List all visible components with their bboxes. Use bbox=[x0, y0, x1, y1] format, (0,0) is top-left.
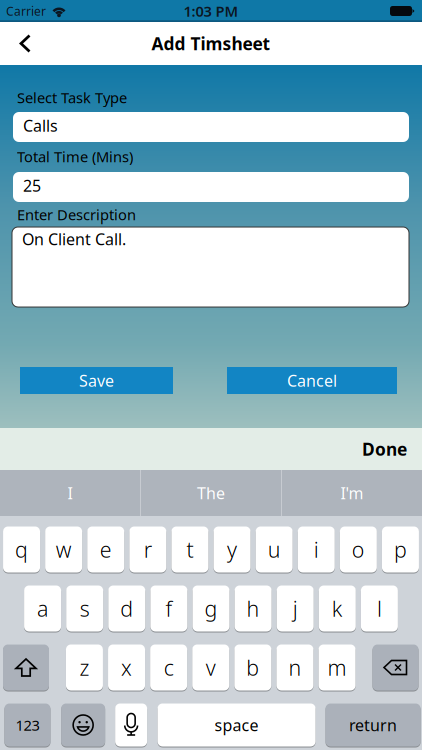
staticText: Calls bbox=[23, 115, 58, 136]
staticText: y bbox=[227, 535, 237, 564]
staticText: Carrier bbox=[6, 3, 46, 19]
staticText: j bbox=[293, 594, 298, 623]
button[interactable]: w bbox=[45, 526, 82, 573]
staticText: r bbox=[144, 535, 152, 564]
button[interactable]: Shift bbox=[3, 644, 49, 691]
staticText: Cancel bbox=[287, 370, 337, 391]
button[interactable]: s bbox=[66, 585, 103, 632]
button[interactable]: 25 bbox=[13, 172, 409, 202]
staticText: a bbox=[37, 594, 48, 623]
button[interactable]: v bbox=[192, 644, 229, 691]
staticText: h bbox=[247, 594, 260, 623]
button[interactable]: return bbox=[326, 703, 421, 747]
button[interactable]: r bbox=[129, 526, 166, 573]
button[interactable]: Back bbox=[0, 22, 44, 65]
staticText: q bbox=[15, 535, 28, 564]
staticText: n bbox=[288, 653, 301, 682]
button[interactable]: e bbox=[87, 526, 124, 573]
button[interactable]: On Client Call. bbox=[12, 227, 409, 307]
staticText: 123 bbox=[15, 715, 39, 735]
staticText: f bbox=[165, 594, 172, 623]
staticText: l bbox=[377, 594, 382, 623]
button[interactable]: z bbox=[66, 644, 103, 691]
button[interactable]: d bbox=[108, 585, 145, 632]
staticText: The bbox=[197, 482, 225, 504]
staticText: 1:03 PM bbox=[183, 1, 238, 21]
staticText: o bbox=[352, 535, 365, 564]
staticText: u bbox=[268, 535, 281, 564]
button[interactable]: Emoji bbox=[61, 703, 105, 747]
button[interactable]: Delete bbox=[372, 644, 418, 691]
button[interactable]: I bbox=[0, 470, 140, 516]
staticText: x bbox=[121, 653, 132, 682]
button[interactable]: h bbox=[235, 585, 272, 632]
staticText: g bbox=[204, 594, 217, 623]
button[interactable]: p bbox=[382, 526, 419, 573]
staticText: Add Timsheet bbox=[151, 32, 270, 55]
staticText: I'm bbox=[340, 482, 363, 504]
button[interactable]: u bbox=[256, 526, 293, 573]
button[interactable]: l bbox=[361, 585, 398, 632]
staticText: s bbox=[80, 594, 90, 623]
button[interactable]: I'm bbox=[282, 470, 422, 516]
button[interactable]: g bbox=[192, 585, 229, 632]
staticText: v bbox=[206, 653, 216, 682]
button[interactable]: y bbox=[214, 526, 251, 573]
staticText: return bbox=[349, 714, 397, 736]
button[interactable]: o bbox=[340, 526, 377, 573]
button[interactable]: The bbox=[141, 470, 281, 516]
staticText: Select Task Type bbox=[17, 88, 127, 107]
button[interactable]: t bbox=[171, 526, 208, 573]
staticText: p bbox=[394, 535, 407, 564]
button[interactable]: q bbox=[3, 526, 40, 573]
button[interactable]: Save bbox=[20, 367, 173, 394]
staticText: e bbox=[100, 535, 112, 564]
button[interactable]: Dictate bbox=[115, 703, 147, 747]
button[interactable]: m bbox=[318, 644, 355, 691]
staticText: space bbox=[214, 714, 258, 736]
staticText: 25 bbox=[23, 175, 41, 196]
staticText: d bbox=[120, 594, 133, 623]
button[interactable]: Numbers bbox=[4, 703, 50, 747]
button[interactable]: Calls bbox=[13, 112, 409, 142]
button[interactable]: n bbox=[276, 644, 313, 691]
button[interactable]: Cancel bbox=[227, 367, 397, 394]
staticText: I bbox=[67, 482, 72, 504]
staticText: b bbox=[246, 653, 259, 682]
button[interactable]: a bbox=[24, 585, 61, 632]
button[interactable]: c bbox=[150, 644, 187, 691]
button[interactable]: k bbox=[319, 585, 356, 632]
staticText: Done bbox=[362, 437, 407, 460]
staticText: Enter Description bbox=[17, 205, 136, 224]
button[interactable]: j bbox=[277, 585, 314, 632]
staticText: t bbox=[186, 535, 193, 564]
staticText: i bbox=[314, 535, 319, 564]
staticText: Total Time (Mins) bbox=[17, 147, 133, 166]
button[interactable]: b bbox=[234, 644, 271, 691]
staticText: m bbox=[327, 653, 346, 682]
button[interactable]: space bbox=[157, 703, 315, 747]
staticText: z bbox=[79, 653, 89, 682]
staticText: w bbox=[56, 535, 72, 564]
button[interactable]: f bbox=[150, 585, 187, 632]
staticText: Save bbox=[79, 370, 114, 391]
button[interactable]: i bbox=[298, 526, 335, 573]
staticText: k bbox=[332, 594, 343, 623]
button[interactable]: x bbox=[108, 644, 145, 691]
staticText: On Client Call. bbox=[22, 228, 126, 250]
button[interactable]: Done bbox=[362, 437, 422, 460]
staticText: c bbox=[164, 653, 174, 682]
